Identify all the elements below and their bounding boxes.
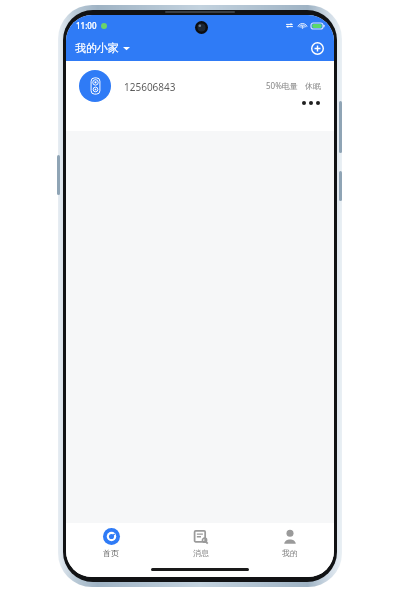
button[interactable]: More options [298,95,324,111]
staticText: 11:00 [76,20,97,31]
staticText: 50%电量 [266,80,298,91]
staticText: 我的 [282,548,298,558]
button[interactable]: 我的小家 [75,41,130,55]
button[interactable]: 消息 [156,523,245,563]
staticText: 首页 [103,548,119,558]
button[interactable]: 我的 [245,523,334,563]
button[interactable]: Add device [308,39,326,57]
button[interactable]: 125606843 [66,61,334,131]
staticText: 休眠 [305,81,321,91]
staticText: 消息 [193,548,209,558]
staticText: 我的小家 [75,41,119,55]
button[interactable]: 首页 [66,523,156,563]
staticText: 125606843 [124,80,176,94]
